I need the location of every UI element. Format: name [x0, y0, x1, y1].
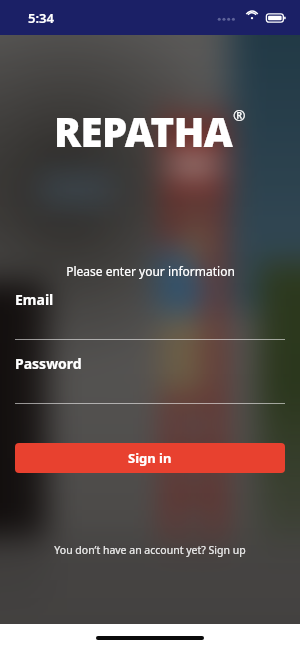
- staticText: 5:34: [28, 9, 54, 27]
- staticText: You don’t have an account yet? Sign up: [54, 543, 246, 557]
- staticText: ®: [233, 105, 246, 125]
- staticText: REPATHA: [54, 104, 233, 158]
- staticText: Email: [15, 290, 54, 309]
- button[interactable]: Sign in: [15, 443, 285, 473]
- button[interactable]: Email: [15, 290, 285, 340]
- staticText: Please enter your information: [66, 263, 235, 279]
- button[interactable]: Password: [15, 354, 285, 404]
- staticText: Sign in: [128, 449, 172, 467]
- staticText: Password: [15, 354, 82, 373]
- other: Home: [96, 636, 204, 640]
- button[interactable]: You don’t have an account yet? Sign up: [46, 540, 254, 560]
